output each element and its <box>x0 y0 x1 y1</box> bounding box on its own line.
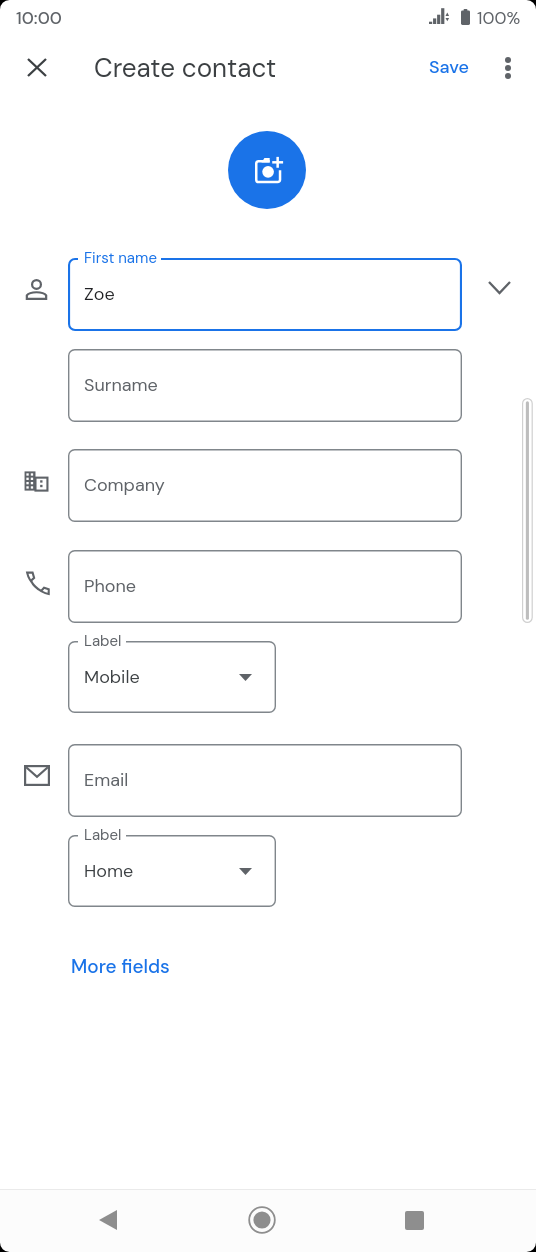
button[interactable]: First name <box>68 258 462 331</box>
button[interactable]: Recents <box>382 1189 446 1251</box>
button[interactable]: Phone <box>68 550 462 623</box>
button[interactable]: More options <box>484 44 531 91</box>
staticText: Company <box>84 473 165 496</box>
button[interactable]: Add photo <box>228 131 306 209</box>
button[interactable]: Label <box>68 641 276 713</box>
staticText: Zoe <box>84 282 115 305</box>
staticText: 100% <box>477 7 521 30</box>
staticText: Email <box>84 768 129 791</box>
staticText: 10:00 <box>16 7 62 30</box>
button[interactable]: Label <box>68 835 276 907</box>
staticText: More fields <box>71 954 170 979</box>
button[interactable]: Company <box>68 449 462 522</box>
staticText: Save <box>429 55 469 78</box>
staticText: Home <box>84 859 134 882</box>
staticText: Mobile <box>84 665 140 688</box>
staticText: Label <box>84 631 122 651</box>
button[interactable]: Expand name fields <box>477 265 522 310</box>
button[interactable]: Email <box>68 744 462 817</box>
staticText: Phone <box>84 574 137 597</box>
button[interactable]: Home <box>230 1189 294 1251</box>
staticText: First name <box>84 248 157 268</box>
button[interactable]: Close <box>13 44 60 91</box>
staticText: Label <box>84 825 122 845</box>
button[interactable]: More fields <box>59 946 182 987</box>
button[interactable]: Surname <box>68 349 462 422</box>
staticText: Create contact <box>94 51 277 85</box>
staticText: Surname <box>84 373 158 396</box>
button[interactable]: Save <box>415 47 483 86</box>
button[interactable]: Back <box>76 1189 140 1251</box>
